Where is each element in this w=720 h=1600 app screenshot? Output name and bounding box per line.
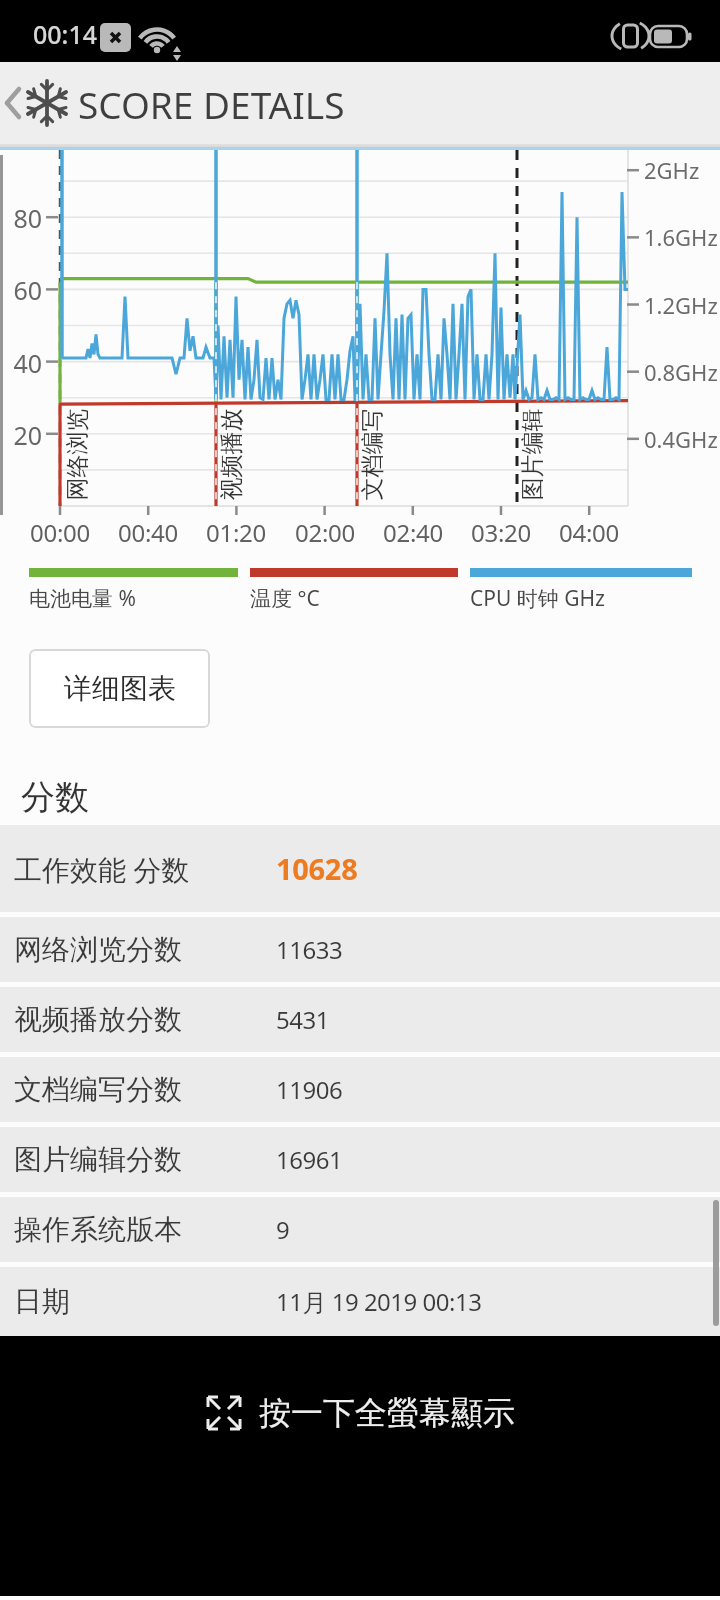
button[interactable]: 详细图表 — [29, 649, 210, 728]
staticText: 9 — [276, 1213, 290, 1246]
staticText: 文档编写分数 — [14, 1072, 276, 1107]
staticText: 视频播放分数 — [14, 1002, 276, 1037]
staticText: 04:00 — [549, 516, 629, 549]
staticText: 电池电量 % — [29, 584, 136, 613]
staticText: 分数 — [21, 776, 89, 819]
staticText: 16961 — [276, 1143, 343, 1176]
staticText: 00:00 — [20, 516, 100, 549]
staticText: 详细图表 — [64, 671, 176, 706]
staticText: 视频播放 — [216, 408, 245, 500]
staticText: 01:20 — [196, 516, 276, 549]
staticText: 11月 19 2019 00:13 — [276, 1285, 482, 1318]
staticText: 00:14 — [33, 17, 98, 51]
staticText: 80 — [6, 201, 42, 235]
staticText: 日期 — [14, 1284, 276, 1319]
button[interactable]: 文档编写分数 — [0, 1057, 720, 1122]
staticText: 11633 — [276, 933, 343, 966]
staticText: 网络浏览分数 — [14, 932, 276, 967]
staticText: CPU 时钟 GHz — [470, 584, 605, 613]
staticText: 02:40 — [373, 516, 453, 549]
button[interactable] — [0, 81, 26, 125]
staticText: 网络浏览 — [62, 408, 91, 500]
button[interactable]: 按一下全螢幕顯示 — [205, 1393, 515, 1433]
button[interactable]: 日期 — [0, 1267, 720, 1336]
staticText: 0.4GHz — [644, 424, 718, 454]
staticText: 11906 — [276, 1073, 343, 1106]
staticText: 02:00 — [285, 516, 365, 549]
staticText: 20 — [6, 418, 42, 452]
staticText: 5431 — [276, 1003, 329, 1036]
staticText: 60 — [6, 273, 42, 307]
staticText: 10628 — [276, 849, 358, 888]
staticText: SCORE DETAILS — [78, 79, 345, 129]
button[interactable]: 操作系统版本 — [0, 1197, 720, 1262]
staticText: 按一下全螢幕顯示 — [259, 1393, 515, 1433]
staticText: 图片编辑 — [517, 408, 546, 500]
staticText: 00:40 — [108, 516, 188, 549]
staticText: 0.8GHz — [644, 357, 718, 387]
button[interactable]: 工作效能 分数 — [0, 825, 720, 912]
staticText: 工作效能 分数 — [14, 850, 276, 888]
staticText: 2GHz — [644, 155, 700, 185]
button[interactable]: 图片编辑分数 — [0, 1127, 720, 1192]
staticText: 温度 °C — [250, 584, 320, 613]
staticText: 1.6GHz — [644, 222, 718, 252]
staticText: 文档编写 — [357, 408, 386, 500]
staticText: 03:20 — [461, 516, 541, 549]
staticText: 40 — [6, 346, 42, 380]
button[interactable]: 视频播放分数 — [0, 987, 720, 1052]
staticText: 1.2GHz — [644, 290, 718, 320]
staticText: 操作系统版本 — [14, 1212, 276, 1247]
button[interactable]: 网络浏览分数 — [0, 917, 720, 982]
staticText: 图片编辑分数 — [14, 1142, 276, 1177]
